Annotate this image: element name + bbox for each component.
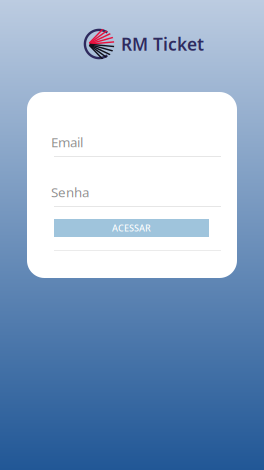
button[interactable]: ACESSAR bbox=[54, 219, 209, 237]
staticText: Senha bbox=[51, 183, 89, 201]
staticText: ACESSAR bbox=[112, 222, 151, 234]
staticText: Email bbox=[51, 133, 83, 151]
staticText: RM Ticket bbox=[121, 32, 204, 56]
